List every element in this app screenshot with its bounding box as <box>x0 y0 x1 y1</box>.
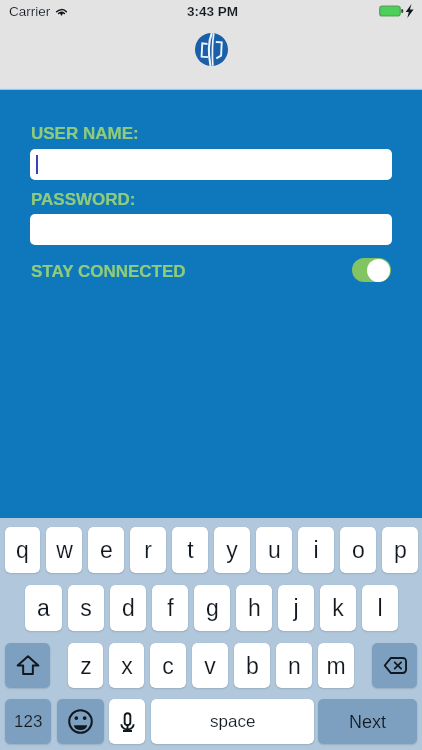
staticText: h <box>248 595 261 621</box>
staticText: w <box>56 537 73 563</box>
button[interactable]: x <box>109 643 144 688</box>
staticText: q <box>16 537 29 563</box>
staticText: c <box>162 653 174 679</box>
staticText: d <box>122 595 135 621</box>
staticText: x <box>121 653 133 679</box>
staticText: s <box>80 595 92 621</box>
button[interactable]: Dictation <box>109 699 145 744</box>
staticText: k <box>332 595 344 621</box>
button[interactable] <box>30 149 392 180</box>
staticText: j <box>293 595 299 621</box>
button[interactable]: s <box>68 585 104 631</box>
button[interactable]: y <box>214 527 250 573</box>
staticText: i <box>313 537 319 563</box>
staticText: USER NAME: <box>31 124 139 143</box>
button[interactable] <box>30 214 392 245</box>
staticText: STAY CONNECTED <box>31 262 186 281</box>
button[interactable]: f <box>152 585 188 631</box>
staticText: m <box>326 653 346 679</box>
button[interactable]: u <box>256 527 292 573</box>
staticText: y <box>226 537 238 563</box>
staticText: b <box>246 653 259 679</box>
button[interactable]: w <box>46 527 82 573</box>
staticText: o <box>352 537 365 563</box>
button[interactable]: n <box>276 643 312 688</box>
button[interactable]: l <box>362 585 398 631</box>
button[interactable]: v <box>192 643 228 688</box>
staticText: p <box>394 537 407 563</box>
button[interactable]: c <box>150 643 186 688</box>
button[interactable]: o <box>340 527 376 573</box>
button[interactable]: q <box>5 527 40 573</box>
button[interactable]: Shift <box>5 643 50 688</box>
button[interactable]: g <box>194 585 230 631</box>
staticText: n <box>288 653 301 679</box>
button[interactable]: j <box>278 585 314 631</box>
button[interactable]: a <box>25 585 62 631</box>
button[interactable]: t <box>172 527 208 573</box>
staticText: Next <box>349 712 387 732</box>
button[interactable]: d <box>110 585 146 631</box>
staticText: 3:43 PM <box>187 4 239 19</box>
button[interactable]: r <box>130 527 166 573</box>
staticText: v <box>204 653 216 679</box>
button[interactable]: z <box>68 643 103 688</box>
button[interactable]: Backspace <box>372 643 417 688</box>
staticText: Carrier <box>9 4 51 19</box>
button[interactable]: m <box>318 643 354 688</box>
button[interactable]: h <box>236 585 272 631</box>
staticText: g <box>206 595 219 621</box>
button[interactable]: e <box>88 527 124 573</box>
button[interactable]: b <box>234 643 270 688</box>
button[interactable]: Emoji <box>57 699 104 744</box>
staticText: r <box>144 537 152 563</box>
button[interactable]: i <box>298 527 334 573</box>
staticText: u <box>268 537 281 563</box>
staticText: PASSWORD: <box>31 190 136 209</box>
staticText: t <box>187 537 194 563</box>
button[interactable]: Stay connected <box>352 258 391 282</box>
staticText: a <box>37 595 50 621</box>
staticText: z <box>80 653 92 679</box>
button[interactable]: 123 <box>5 699 51 744</box>
button[interactable]: k <box>320 585 356 631</box>
staticText: f <box>167 595 174 621</box>
staticText: e <box>100 537 113 563</box>
button[interactable]: space <box>151 699 314 744</box>
staticText: space <box>210 712 256 731</box>
button[interactable]: p <box>382 527 418 573</box>
button[interactable]: Next <box>318 699 417 744</box>
staticText: 123 <box>14 712 43 731</box>
staticText: l <box>377 595 383 621</box>
